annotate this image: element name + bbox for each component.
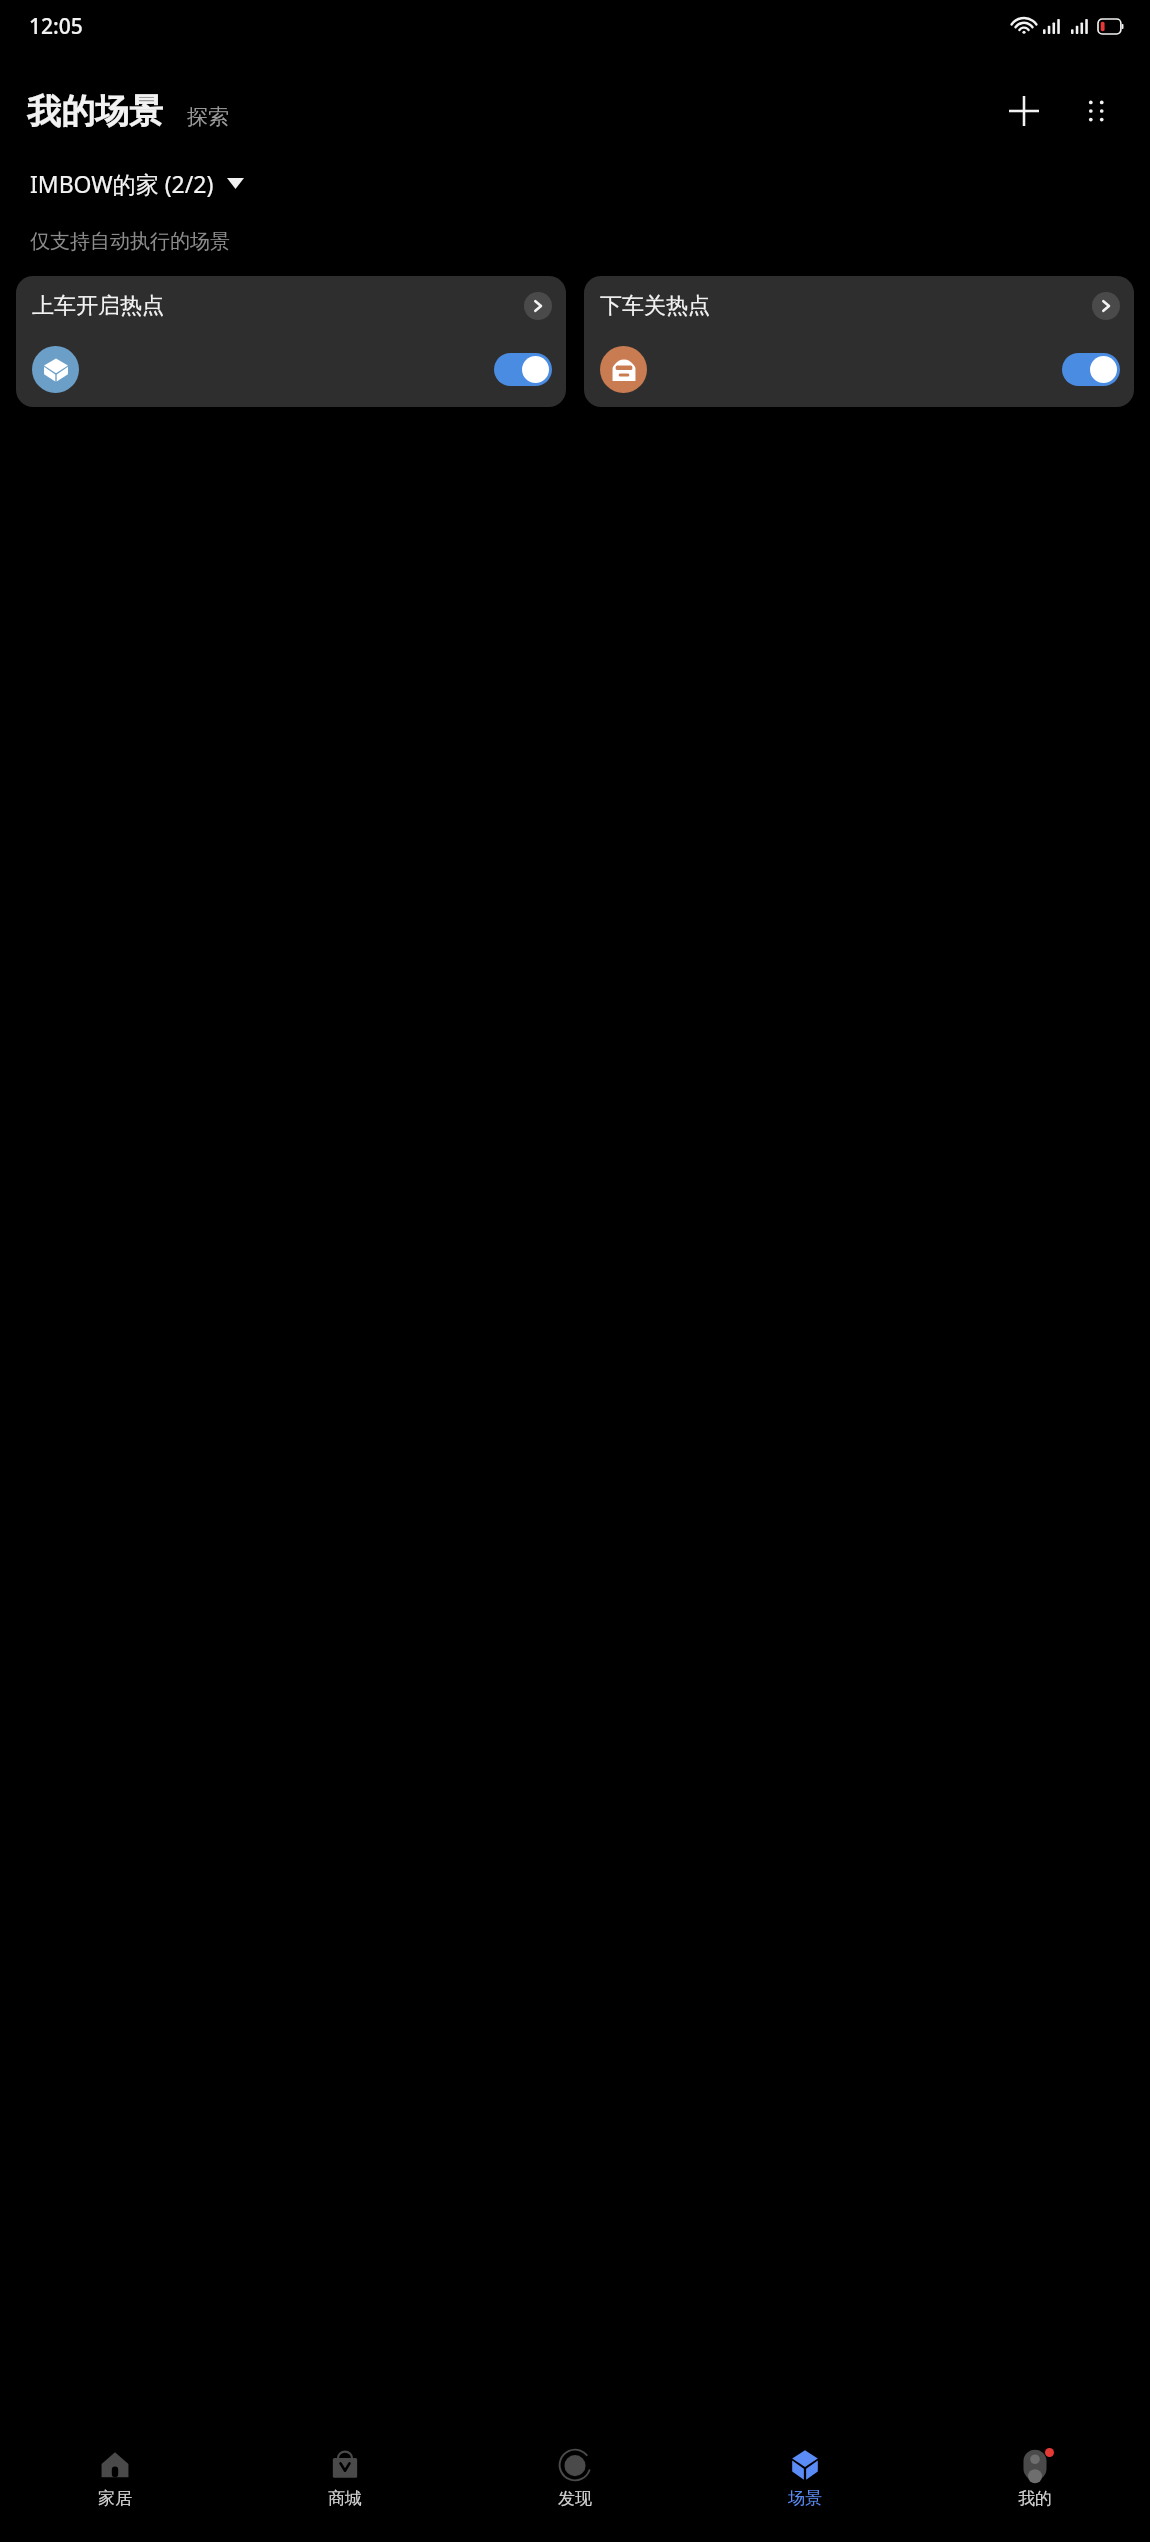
button[interactable]: 上车开启热点 (16, 276, 566, 407)
staticText: 商城 (328, 2488, 362, 2509)
staticText: 发现 (558, 2488, 592, 2509)
button[interactable]: IMBOW的家 (2/2) (30, 168, 244, 199)
staticText: IMBOW的家 (2/2) (30, 168, 214, 199)
button[interactable]: More options (1070, 85, 1122, 137)
button[interactable]: 下车关热点 (584, 276, 1134, 407)
staticText: 探索 (187, 104, 229, 130)
button[interactable]: 发现 (460, 2442, 690, 2542)
staticText: 上车开启热点 (32, 292, 524, 320)
staticText: 12:05 (29, 12, 83, 41)
button[interactable]: 我的场景 (27, 90, 163, 133)
button[interactable]: Scene enabled toggle (494, 353, 552, 386)
staticText: 家居 (98, 2488, 132, 2509)
staticText: 下车关热点 (600, 292, 1092, 320)
button[interactable]: Open scene details (524, 292, 552, 320)
staticText: 场景 (788, 2488, 822, 2509)
staticText: 我的 (1018, 2488, 1052, 2509)
button[interactable]: 探索 (187, 104, 229, 133)
button[interactable]: 商城 (230, 2442, 460, 2542)
button[interactable]: 场景 (690, 2442, 920, 2542)
button[interactable]: 家居 (0, 2442, 230, 2542)
button[interactable]: 我的 (920, 2442, 1150, 2542)
button[interactable]: Add scene (998, 85, 1050, 137)
staticText: 仅支持自动执行的场景 (30, 229, 230, 254)
button[interactable]: Open scene details (1092, 292, 1120, 320)
staticText: 我的场景 (27, 90, 163, 133)
button[interactable]: Scene enabled toggle (1062, 353, 1120, 386)
